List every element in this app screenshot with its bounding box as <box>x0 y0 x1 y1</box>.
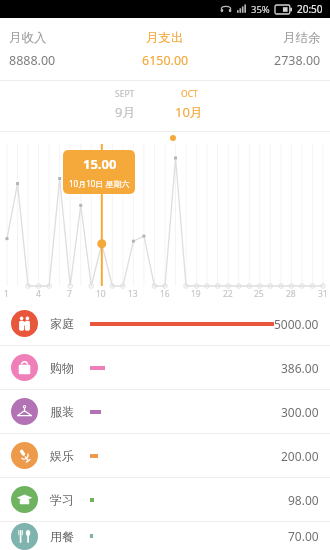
staticText: 386.00 <box>281 360 319 376</box>
staticText: 35% <box>251 3 270 16</box>
staticText: 22 <box>223 288 233 300</box>
staticText: 服装 <box>50 404 74 419</box>
button[interactable]: 月收入 <box>9 18 113 80</box>
staticText: 4 <box>36 288 41 300</box>
button[interactable]: 学习 <box>0 478 330 521</box>
other: 娱乐 <box>11 442 38 469</box>
staticText: 9月 <box>115 103 136 121</box>
staticText: 10月 <box>175 103 203 121</box>
staticText: 20:50 <box>297 2 323 16</box>
staticText: 学习 <box>50 492 74 507</box>
button[interactable]: 月结余 <box>217 18 321 80</box>
staticText: 家庭 <box>50 316 74 331</box>
staticText: 8888.00 <box>9 52 56 69</box>
staticText: 15.00 <box>83 155 117 173</box>
staticText: 10 <box>96 288 106 300</box>
staticText: SEPT <box>115 88 135 100</box>
staticText: 6150.00 <box>142 52 189 69</box>
staticText: 70.00 <box>288 528 319 544</box>
staticText: 用餐 <box>50 529 74 544</box>
staticText: 10月10日 星期六 <box>69 178 130 189</box>
other: 购物 <box>11 354 38 381</box>
button[interactable]: 15.00 <box>63 150 135 194</box>
button[interactable]: 服装 <box>0 390 330 433</box>
staticText: 16 <box>160 288 170 300</box>
staticText: 7 <box>67 288 72 300</box>
button[interactable]: 月支出 <box>113 18 217 80</box>
staticText: 月结余 <box>283 30 321 46</box>
other: 家庭 <box>11 310 38 337</box>
button[interactable]: 家庭 <box>0 302 330 345</box>
button[interactable]: 购物 <box>0 346 330 389</box>
staticText: 300.00 <box>281 404 319 420</box>
staticText: 200.00 <box>281 448 319 464</box>
other: 学习 <box>11 486 38 513</box>
button[interactable]: 娱乐 <box>0 434 330 477</box>
staticText: 25 <box>254 288 264 300</box>
button[interactable]: OCT <box>168 88 210 121</box>
staticText: 28 <box>286 288 296 300</box>
staticText: OCT <box>181 88 198 100</box>
staticText: 98.00 <box>288 492 319 508</box>
staticText: 31 <box>318 288 328 300</box>
staticText: 19 <box>191 288 201 300</box>
other: 服装 <box>11 398 38 425</box>
other: 用餐 <box>11 523 38 550</box>
staticText: 购物 <box>50 360 74 375</box>
staticText: 月收入 <box>9 30 47 46</box>
staticText: 娱乐 <box>50 448 74 463</box>
staticText: 5000.00 <box>274 316 319 332</box>
staticText: 2738.00 <box>274 52 321 69</box>
staticText: 1 <box>4 288 9 300</box>
staticText: 月支出 <box>146 30 184 46</box>
button[interactable]: 用餐 <box>0 522 330 550</box>
staticText: 13 <box>128 288 138 300</box>
button[interactable]: SEPT <box>104 88 146 121</box>
